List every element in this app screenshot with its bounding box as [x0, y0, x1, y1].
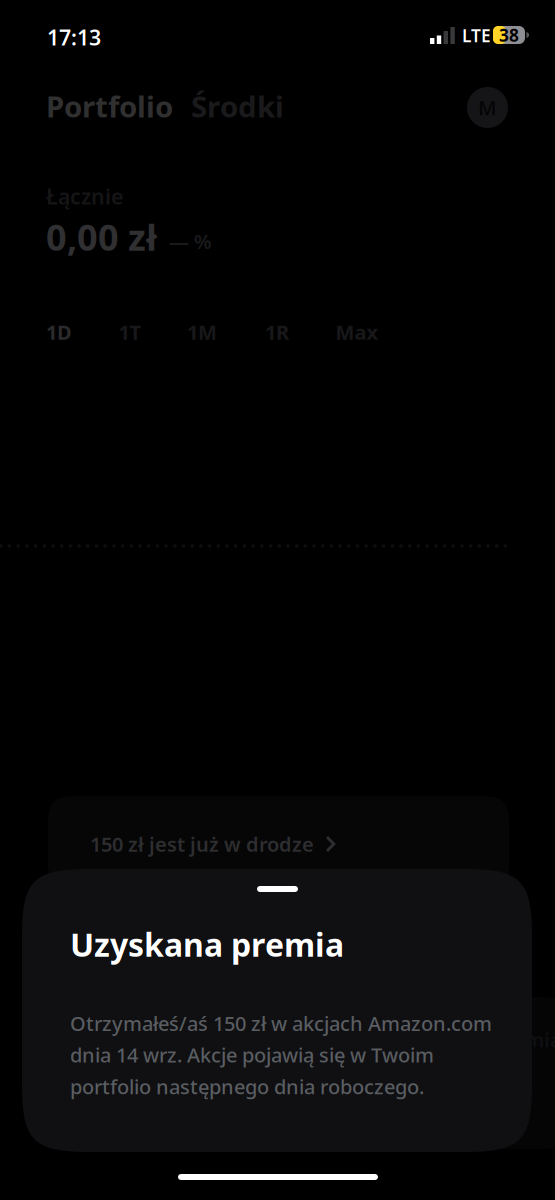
staticText: M [478, 94, 497, 121]
staticText: 1R [265, 319, 289, 345]
staticText: 150 zł jest już w drodze [90, 831, 314, 857]
button[interactable]: 1T [100, 316, 160, 348]
staticText: Łącznie [46, 182, 123, 210]
staticText: 1T [118, 319, 141, 345]
button[interactable]: 1R [247, 316, 307, 348]
button[interactable]: 1D [29, 316, 89, 348]
staticText: LTE [462, 24, 491, 47]
button[interactable]: Portfolio [46, 86, 178, 126]
staticText: Portfolio [46, 86, 173, 125]
staticText: 38 [499, 23, 519, 46]
staticText: Środki [191, 86, 284, 125]
staticText: 1D [46, 319, 72, 345]
button[interactable]: Max [322, 316, 392, 348]
staticText: 17:13 [47, 23, 101, 51]
staticText: — % [169, 228, 212, 255]
staticText: Otrzymałeś/aś 150 zł w akcjach Amazon.co… [70, 1010, 492, 1100]
button[interactable]: 1M [172, 316, 232, 348]
staticText: Uzyskana premia [392, 1026, 555, 1053]
button[interactable]: Uzyskana premia [48, 997, 555, 1149]
staticText: Uzyskana premia [70, 923, 344, 965]
staticText: 1M [187, 319, 217, 345]
button[interactable]: Profil [467, 87, 508, 128]
staticText: Max [335, 319, 378, 345]
button[interactable]: Środki [191, 86, 291, 126]
staticText: 0,00 zł [46, 213, 157, 261]
button[interactable]: 150 zł jest już w drodze [48, 796, 509, 892]
